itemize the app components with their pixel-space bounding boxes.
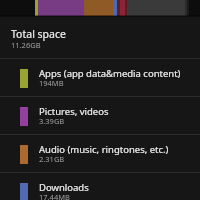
- staticText: 11.26GB: [11, 40, 41, 50]
- staticText: 194MB: [39, 78, 64, 88]
- button[interactable]: Pictures, videos: [0, 97, 200, 134]
- staticText: Apps (app data&media content): [39, 67, 181, 80]
- staticText: 3.39GB: [39, 116, 65, 126]
- button[interactable]: Downloads: [0, 173, 200, 200]
- staticText: Downloads: [39, 181, 89, 194]
- staticText: 17.44MB: [39, 192, 70, 200]
- staticText: Audio (music, ringtones, etc.): [39, 143, 169, 156]
- button[interactable]: Apps (app data&media content): [0, 59, 200, 96]
- button[interactable]: Total space: [0, 17, 200, 58]
- button[interactable]: Audio (music, ringtones, etc.): [0, 135, 200, 172]
- staticText: Pictures, videos: [39, 105, 109, 118]
- staticText: Total space: [11, 27, 66, 41]
- staticText: 2.31GB: [39, 154, 65, 164]
